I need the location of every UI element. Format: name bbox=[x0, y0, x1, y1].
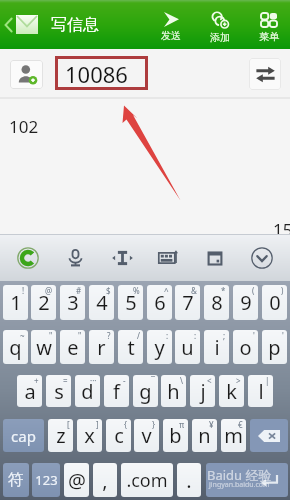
button[interactable]: j bbox=[190, 375, 215, 407]
staticText: 菜单 bbox=[259, 30, 279, 43]
button[interactable]: 5 bbox=[118, 285, 143, 320]
button[interactable]: i bbox=[204, 330, 229, 364]
staticText: 3 bbox=[67, 289, 79, 316]
button[interactable]: cap bbox=[3, 419, 44, 452]
staticText: jingyan.baidu.com bbox=[209, 480, 270, 490]
staticText: 写信息 bbox=[51, 15, 99, 35]
button[interactable]: e bbox=[60, 330, 85, 364]
button[interactable]: Backspace bbox=[250, 419, 288, 452]
button[interactable]: l bbox=[248, 375, 273, 407]
button[interactable]: @ bbox=[64, 463, 89, 497]
staticText: s bbox=[54, 378, 64, 405]
button[interactable]: , bbox=[93, 463, 117, 497]
staticText: | bbox=[265, 375, 270, 386]
staticText: e bbox=[67, 334, 79, 361]
staticText: 0 bbox=[269, 289, 281, 316]
button[interactable]: 102 bbox=[0, 99, 290, 234]
staticText: ( bbox=[252, 285, 255, 296]
button[interactable]: s bbox=[46, 375, 71, 407]
button[interactable]: 8 bbox=[204, 285, 229, 320]
button[interactable]: 10086 bbox=[57, 56, 239, 91]
button[interactable]: 菜单 bbox=[246, 0, 290, 49]
button[interactable]: Input method bbox=[7, 236, 49, 280]
button[interactable]: Add contact bbox=[10, 60, 43, 89]
button[interactable]: w bbox=[31, 330, 56, 364]
staticText: o bbox=[239, 334, 252, 361]
button[interactable]: Back bbox=[0, 0, 105, 49]
button[interactable]: Hide keyboard bbox=[241, 236, 283, 280]
button[interactable]: Voice input bbox=[54, 236, 96, 280]
button[interactable]: n bbox=[192, 419, 217, 452]
button[interactable]: 6 bbox=[147, 285, 172, 320]
button[interactable]: 2 bbox=[31, 285, 56, 320]
staticText: ) bbox=[281, 285, 284, 296]
staticText: : bbox=[194, 330, 197, 341]
button[interactable]: d bbox=[75, 375, 100, 407]
button[interactable]: 4 bbox=[89, 285, 114, 320]
staticText: @ bbox=[68, 467, 86, 494]
staticText: 6 bbox=[154, 289, 166, 316]
button[interactable]: 添加 bbox=[197, 0, 243, 49]
staticText: 9 bbox=[240, 289, 252, 316]
staticText: [ bbox=[67, 419, 70, 430]
staticText: x bbox=[84, 422, 95, 449]
button[interactable]: 符 bbox=[3, 463, 29, 497]
staticText: u bbox=[181, 334, 194, 361]
staticText: 10086 bbox=[65, 59, 128, 89]
staticText: : bbox=[166, 330, 169, 341]
button[interactable]: a bbox=[17, 375, 42, 407]
button[interactable]: b bbox=[163, 419, 188, 452]
staticText: ~ bbox=[20, 330, 25, 341]
button[interactable]: y bbox=[147, 330, 172, 364]
button[interactable]: x bbox=[77, 419, 102, 452]
button[interactable]: t bbox=[118, 330, 143, 364]
staticText: , bbox=[102, 467, 108, 494]
button[interactable]: v bbox=[134, 419, 159, 452]
staticText: \ bbox=[180, 375, 183, 386]
button[interactable]: Enter bbox=[206, 463, 288, 497]
button[interactable]: 发送 bbox=[148, 0, 194, 49]
button[interactable]: h bbox=[161, 375, 186, 407]
staticText: 102 bbox=[9, 115, 39, 138]
button[interactable]: z bbox=[48, 419, 73, 452]
button[interactable]: f bbox=[104, 375, 129, 407]
button[interactable]: u bbox=[175, 330, 200, 364]
staticText: - bbox=[123, 375, 126, 386]
button[interactable]: m bbox=[221, 419, 246, 452]
staticText: ' bbox=[282, 330, 284, 341]
button[interactable]: 0 bbox=[262, 285, 287, 320]
staticText: @ bbox=[45, 285, 53, 296]
staticText: { bbox=[124, 419, 128, 430]
staticText: cap bbox=[11, 426, 36, 446]
button[interactable]: 3 bbox=[60, 285, 85, 320]
button[interactable]: k bbox=[219, 375, 244, 407]
staticText: " bbox=[78, 330, 82, 341]
staticText: r bbox=[97, 334, 106, 361]
button[interactable]: 9 bbox=[233, 285, 258, 320]
button[interactable]: . bbox=[177, 463, 201, 497]
button[interactable]: c bbox=[106, 419, 131, 452]
button[interactable]: 123 bbox=[32, 463, 60, 497]
staticText: l bbox=[258, 378, 264, 405]
button[interactable]: Swap sender bbox=[249, 58, 281, 90]
staticText: y bbox=[154, 334, 165, 361]
staticText: d bbox=[81, 378, 94, 405]
staticText: 发送 bbox=[161, 29, 181, 42]
button[interactable]: g bbox=[133, 375, 158, 407]
staticText: k bbox=[226, 378, 237, 405]
button[interactable]: 7 bbox=[175, 285, 200, 320]
staticText: c bbox=[114, 422, 124, 449]
button[interactable]: r bbox=[89, 330, 114, 364]
button[interactable]: 1 bbox=[3, 285, 28, 320]
button[interactable]: Keyboard layout bbox=[147, 236, 189, 280]
staticText: a bbox=[24, 378, 36, 405]
button[interactable]: Clipboard bbox=[194, 236, 236, 280]
button[interactable]: .com bbox=[121, 463, 173, 497]
button[interactable]: q bbox=[3, 330, 28, 364]
button[interactable]: Move cursor bbox=[101, 236, 143, 280]
button[interactable]: o bbox=[233, 330, 258, 364]
other: Back bbox=[5, 18, 12, 32]
button[interactable]: p bbox=[262, 330, 287, 364]
staticText: ¥ bbox=[209, 419, 214, 430]
staticText: < bbox=[207, 375, 212, 386]
